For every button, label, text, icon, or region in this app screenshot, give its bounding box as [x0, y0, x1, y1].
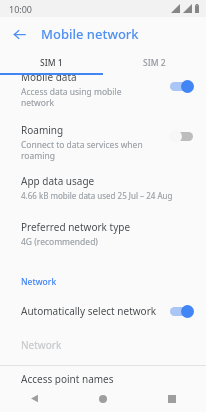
staticText: Network — [21, 338, 62, 352]
button[interactable]: Home — [68, 385, 137, 412]
staticText: Mobile data — [21, 70, 77, 84]
staticText: 4G (recommended) — [21, 236, 98, 248]
button[interactable]: Back — [0, 385, 68, 412]
button[interactable]: Recent apps — [137, 385, 206, 412]
staticText: Access data using mobile network — [21, 86, 122, 108]
button[interactable]: Preferred network type — [0, 220, 206, 256]
staticText: Connect to data services when roaming — [21, 139, 143, 161]
button[interactable]: SIM 2 — [103, 51, 206, 75]
staticText: Access point names — [21, 372, 114, 386]
staticText: Network — [21, 276, 57, 288]
button[interactable]: SIM 1 — [0, 51, 103, 75]
button[interactable]: Mobile data — [0, 75, 206, 118]
button[interactable]: Roaming — [0, 118, 206, 170]
staticText: 10:00 — [9, 3, 33, 15]
staticText: App data usage — [21, 174, 95, 188]
button[interactable]: Automatically select network — [0, 300, 206, 322]
button[interactable]: Back — [5, 20, 33, 48]
button[interactable]: App data usage — [0, 170, 206, 209]
staticText: 4.66 kB mobile data used 25 Jul – 24 Aug — [21, 190, 173, 201]
staticText: Mobile network — [41, 25, 139, 43]
button[interactable]: Access point names — [0, 366, 206, 392]
staticText: Automatically select network — [21, 304, 157, 318]
staticText: SIM 2 — [143, 57, 166, 69]
staticText: SIM 1 — [40, 57, 63, 69]
staticText: Roaming — [21, 123, 64, 137]
staticText: Preferred network type — [21, 220, 131, 234]
